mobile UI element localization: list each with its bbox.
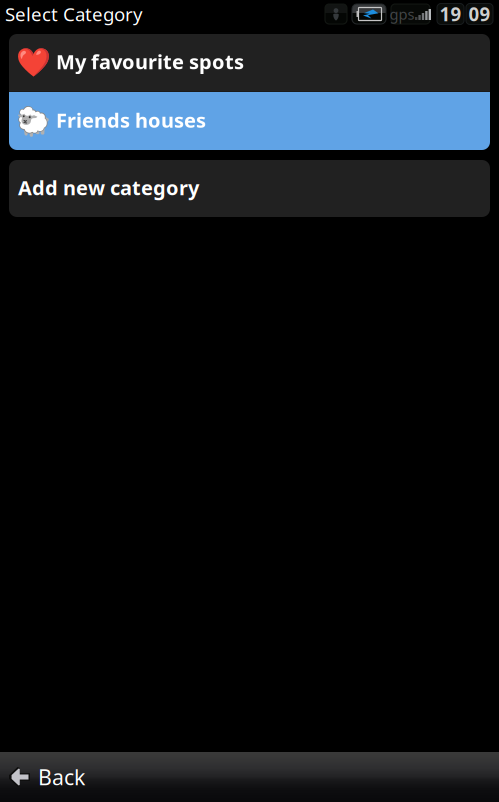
staticText: 09 [468,2,490,26]
staticText: 19 [439,2,461,26]
staticText: 🐑 [15,105,50,137]
button[interactable]: Back [0,752,499,802]
staticText: My favourite spots [56,48,244,75]
staticText: ❤️ [15,46,50,78]
button[interactable]: Add new category [9,160,490,217]
staticText: Select Category [5,2,143,26]
staticText: Friends houses [56,107,206,133]
staticText: Add new category [18,174,199,201]
button[interactable]: 🐑 [9,92,490,150]
button[interactable]: ❤️ [9,34,490,91]
staticText: gps [389,4,414,24]
staticText: Back [38,763,85,791]
